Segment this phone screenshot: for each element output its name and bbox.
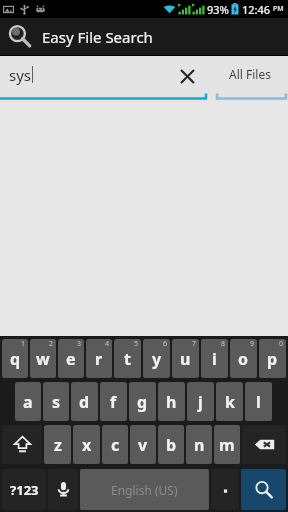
staticText: j xyxy=(198,391,203,413)
staticText: 6 xyxy=(163,339,168,349)
button[interactable]: v xyxy=(130,425,156,464)
staticText: 9 xyxy=(250,339,255,349)
staticText: x xyxy=(82,434,92,456)
button[interactable]: c xyxy=(102,425,128,464)
staticText: Easy File Search xyxy=(42,27,153,47)
staticText: 5 xyxy=(134,339,139,349)
button[interactable]: Shift xyxy=(2,425,42,464)
button[interactable]: 4 xyxy=(86,339,112,378)
staticText: v xyxy=(138,434,148,456)
staticText: o xyxy=(238,348,249,370)
button[interactable]: l xyxy=(245,382,272,421)
staticText: h xyxy=(166,391,177,413)
staticText: a xyxy=(23,391,33,413)
button[interactable]: g xyxy=(129,382,156,421)
staticText: w xyxy=(36,348,50,370)
button[interactable]: x xyxy=(73,425,100,464)
staticText: PM xyxy=(273,4,284,14)
button[interactable]: j xyxy=(187,382,214,421)
button[interactable]: z xyxy=(44,425,71,464)
staticText: p xyxy=(267,348,278,370)
staticText: q xyxy=(10,348,21,370)
button[interactable]: a xyxy=(15,382,41,421)
button[interactable]: 0 xyxy=(259,339,286,378)
button[interactable]: Period xyxy=(211,469,239,510)
staticText: r xyxy=(95,348,103,370)
button[interactable]: Voice input xyxy=(48,469,78,510)
staticText: All Files xyxy=(229,66,271,82)
staticText: d xyxy=(79,391,90,413)
button[interactable]: Search xyxy=(241,469,286,510)
button[interactable]: Delete xyxy=(242,425,286,464)
button[interactable]: All Files xyxy=(212,56,288,102)
button[interactable]: 7 xyxy=(172,339,199,378)
button[interactable]: 2 xyxy=(30,339,56,378)
button[interactable]: sys xyxy=(0,56,208,102)
staticText: k xyxy=(225,391,235,413)
button[interactable]: k xyxy=(216,382,243,421)
staticText: c xyxy=(111,434,120,456)
staticText: 8 xyxy=(221,339,226,349)
button[interactable]: 3 xyxy=(58,339,84,378)
button[interactable]: f xyxy=(100,382,127,421)
button[interactable]: d xyxy=(71,382,98,421)
staticText: 4 xyxy=(105,339,110,349)
staticText: i xyxy=(212,348,217,370)
staticText: u xyxy=(180,348,191,370)
button[interactable]: h xyxy=(158,382,185,421)
staticText: f xyxy=(110,391,117,413)
button[interactable]: English (US) xyxy=(80,469,209,510)
staticText: English (US) xyxy=(111,482,178,498)
staticText: 12:46 xyxy=(242,2,271,17)
button[interactable]: Clear search xyxy=(176,65,198,87)
button[interactable]: s xyxy=(43,382,69,421)
staticText: sys xyxy=(9,65,32,85)
staticText: t xyxy=(124,348,131,370)
staticText: 7 xyxy=(192,339,197,349)
button[interactable]: 6 xyxy=(143,339,170,378)
staticText: m xyxy=(219,434,235,456)
staticText: g xyxy=(137,391,148,413)
button[interactable]: n xyxy=(186,425,212,464)
staticText: l xyxy=(256,391,261,413)
button[interactable]: ?123 xyxy=(2,469,46,510)
staticText: s xyxy=(52,391,61,413)
button[interactable]: 9 xyxy=(230,339,257,378)
staticText: y xyxy=(152,348,162,370)
button[interactable]: m xyxy=(214,425,240,464)
staticText: b xyxy=(166,434,177,456)
button[interactable]: 5 xyxy=(114,339,141,378)
staticText: 0 xyxy=(279,339,284,349)
staticText: 2 xyxy=(49,339,54,349)
button[interactable]: b xyxy=(158,425,184,464)
staticText: 1 xyxy=(21,339,26,349)
staticText: e xyxy=(66,348,76,370)
staticText: n xyxy=(194,434,205,456)
staticText: z xyxy=(54,434,62,456)
button[interactable]: 8 xyxy=(201,339,228,378)
button[interactable]: 1 xyxy=(2,339,28,378)
staticText: 93% xyxy=(207,2,229,17)
staticText: ?123 xyxy=(10,481,39,499)
staticText: 3 xyxy=(77,339,82,349)
